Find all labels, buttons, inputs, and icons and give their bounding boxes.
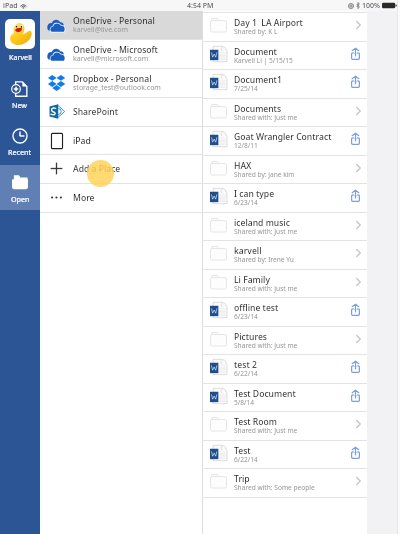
- other: Open Documents: [356, 107, 361, 115]
- button[interactable]: Account Karvell: [5, 19, 35, 49]
- staticText: More: [73, 192, 95, 204]
- staticText: 4:54 PM: [187, 1, 214, 11]
- button[interactable]: iceland music: [202, 212, 367, 241]
- staticText: iceland music: [234, 217, 290, 229]
- button[interactable]: I can type: [202, 183, 367, 212]
- staticText: karvell@live.com: [73, 25, 129, 35]
- other: Open Day 1 LA Airport: [356, 21, 361, 29]
- staticText: Shared by: Irene Yu: [234, 255, 294, 264]
- button[interactable]: Pictures: [202, 326, 367, 355]
- button[interactable]: Test Document: [202, 383, 367, 412]
- staticText: Document: [234, 46, 277, 58]
- staticText: Documents: [234, 103, 282, 115]
- button[interactable]: Add a Place: [40, 154, 202, 183]
- staticText: Recent: [8, 147, 32, 157]
- button[interactable]: Document: [202, 41, 367, 70]
- other: Open Test Room: [356, 420, 361, 428]
- staticText: New: [12, 100, 28, 110]
- button[interactable]: karvell: [202, 240, 367, 269]
- staticText: Trip: [234, 473, 250, 485]
- staticText: iPad: [73, 135, 91, 147]
- button[interactable]: offline test: [202, 297, 367, 326]
- other: Open Li Family: [356, 278, 361, 286]
- staticText: Test Room: [234, 416, 277, 428]
- other: Share Test: [351, 447, 360, 459]
- staticText: 100%: [362, 1, 380, 11]
- staticText: 12/8/11: [234, 141, 258, 150]
- button[interactable]: Dropbox - Personal: [40, 68, 202, 97]
- staticText: 6/22/14: [234, 369, 258, 378]
- button[interactable]: Li Family: [202, 269, 367, 298]
- staticText: Li Family: [234, 274, 270, 286]
- button[interactable]: Day 1 LA Airport: [202, 12, 367, 41]
- staticText: Pictures: [234, 331, 268, 343]
- staticText: test 2: [234, 359, 257, 371]
- other: Share Test Document: [351, 390, 360, 402]
- other: Open: [11, 174, 29, 190]
- staticText: Document1: [234, 74, 282, 86]
- button[interactable]: OneDrive - Microsoft: [40, 39, 202, 68]
- staticText: Shared with: Just me: [234, 284, 298, 293]
- staticText: 6/23/14: [234, 312, 258, 321]
- staticText: Open: [11, 194, 30, 204]
- staticText: 6/23/14: [234, 198, 258, 207]
- button[interactable]: More: [40, 183, 202, 212]
- staticText: SharePoint: [73, 106, 118, 118]
- staticText: Shared with: Just me: [234, 227, 298, 236]
- staticText: iPad: [3, 1, 18, 11]
- staticText: karvell: [234, 245, 262, 257]
- button[interactable]: iPad: [40, 126, 202, 155]
- button[interactable]: Goat Wrangler Contract: [202, 126, 367, 155]
- staticText: Add a Place: [73, 163, 121, 175]
- other: Recent: [12, 128, 28, 144]
- staticText: Karvell Li | 5/15/15: [234, 56, 293, 65]
- button[interactable]: Document1: [202, 69, 367, 98]
- staticText: OneDrive - Personal: [73, 15, 155, 27]
- staticText: Shared with: Just me: [234, 341, 298, 350]
- other: Share offline test: [351, 304, 360, 316]
- staticText: Shared by: K L: [234, 27, 278, 36]
- staticText: Shared by: jane kim: [234, 170, 295, 179]
- other: Open Trip: [356, 477, 361, 485]
- button[interactable]: Documents: [202, 98, 367, 127]
- button[interactable]: Test Room: [202, 411, 367, 440]
- button[interactable]: test 2: [202, 354, 367, 383]
- other: Open iceland music: [356, 221, 361, 229]
- staticText: Goat Wrangler Contract: [234, 131, 332, 143]
- button[interactable]: SharePoint: [40, 97, 202, 126]
- staticText: HAX: [234, 160, 252, 172]
- staticText: Karvell: [9, 52, 32, 62]
- staticText: Test Document: [234, 388, 296, 400]
- staticText: Shared with: Some people: [234, 483, 315, 492]
- staticText: 5/8/14: [234, 398, 254, 407]
- staticText: storage_test@outlook.com: [73, 83, 161, 93]
- staticText: 7/25/14: [234, 84, 258, 93]
- staticText: offline test: [234, 302, 279, 314]
- other: Open karvell: [356, 249, 361, 257]
- other: Share Document: [351, 48, 360, 60]
- button[interactable]: OneDrive - Personal: [40, 10, 202, 39]
- other: Open HAX: [356, 164, 361, 172]
- staticText: OneDrive - Microsoft: [73, 44, 158, 56]
- button[interactable]: Trip: [202, 468, 367, 497]
- staticText: Day 1 LA Airport: [234, 17, 303, 29]
- button[interactable]: HAX: [202, 155, 367, 184]
- other: Open Pictures: [356, 335, 361, 343]
- staticText: I can type: [234, 188, 275, 200]
- other: Share Document1: [351, 76, 360, 88]
- other: New: [11, 80, 29, 98]
- other: Share I can type: [351, 190, 360, 202]
- other: Share test 2: [351, 361, 360, 373]
- staticText: Test: [234, 445, 251, 457]
- staticText: karvell@microsoft.com: [73, 54, 149, 64]
- button[interactable]: [0, 165, 40, 210]
- staticText: Shared with: Just me: [234, 113, 298, 122]
- staticText: Dropbox - Personal: [73, 73, 152, 85]
- other: Share Goat Wrangler Contract: [351, 133, 360, 145]
- staticText: Shared with: Just me: [234, 426, 298, 435]
- staticText: 6/22/14: [234, 455, 258, 464]
- button[interactable]: Test: [202, 440, 367, 469]
